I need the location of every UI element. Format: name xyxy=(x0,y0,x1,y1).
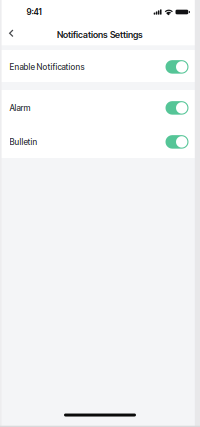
button[interactable]: Bulletin xyxy=(165,135,188,149)
button[interactable]: Back xyxy=(0,24,14,46)
button[interactable]: Enable Notifications xyxy=(165,60,188,74)
staticText: Bulletin xyxy=(9,137,37,147)
staticText: Notifications Settings xyxy=(57,29,143,40)
staticText: 9:41 xyxy=(26,7,41,17)
button[interactable]: Alarm xyxy=(165,101,188,115)
staticText: Enable Notifications xyxy=(9,62,84,72)
staticText: Alarm xyxy=(9,103,30,113)
